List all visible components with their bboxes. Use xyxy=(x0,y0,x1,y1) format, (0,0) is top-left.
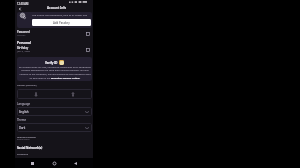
staticText: Bangladesh xyxy=(17,138,30,141)
staticText: Social Network(s) xyxy=(17,146,43,150)
staticText: Theme xyxy=(17,118,27,122)
button[interactable]: Birthday xyxy=(15,46,93,54)
staticText: Add Passkey xyxy=(53,21,70,25)
staticText: Password xyxy=(17,30,30,34)
staticText: English xyxy=(19,110,29,114)
button[interactable]: Recents xyxy=(28,159,37,168)
button[interactable]: Verify ID xyxy=(17,57,92,81)
staticText: Verify ID xyxy=(45,61,58,65)
button[interactable]: Back xyxy=(71,159,80,168)
staticText: Language xyxy=(17,102,31,106)
staticText: ••••••••• xyxy=(17,33,26,36)
other: Edit Birthday xyxy=(86,48,90,52)
button[interactable]: Password xyxy=(15,30,93,38)
staticText: Facebook xyxy=(17,152,29,155)
staticText: Personal xyxy=(17,41,31,45)
staticText: Log in with your fingerprint, face ID or… xyxy=(32,13,88,16)
button[interactable]: Home xyxy=(50,159,59,168)
staticText: Gender (Optional) xyxy=(17,84,37,87)
staticText: Jun 3, 1996 xyxy=(17,49,30,52)
other: Edit Password xyxy=(86,32,90,36)
button[interactable]: Male xyxy=(54,89,92,99)
staticText: Dark xyxy=(19,126,26,130)
button[interactable]: Dark xyxy=(17,123,92,132)
staticText: Market/Location xyxy=(17,135,36,138)
staticText: Account Info xyxy=(47,6,67,10)
staticText: By clicking Verify My Age, you will be c… xyxy=(19,65,91,79)
button[interactable]: Back xyxy=(16,5,23,12)
button[interactable]: Female xyxy=(17,89,54,99)
button[interactable]: English xyxy=(17,107,92,116)
button[interactable]: Add Passkey xyxy=(32,19,91,26)
staticText: Birthday xyxy=(17,46,29,50)
staticText: 12:30 AM xyxy=(17,2,29,6)
